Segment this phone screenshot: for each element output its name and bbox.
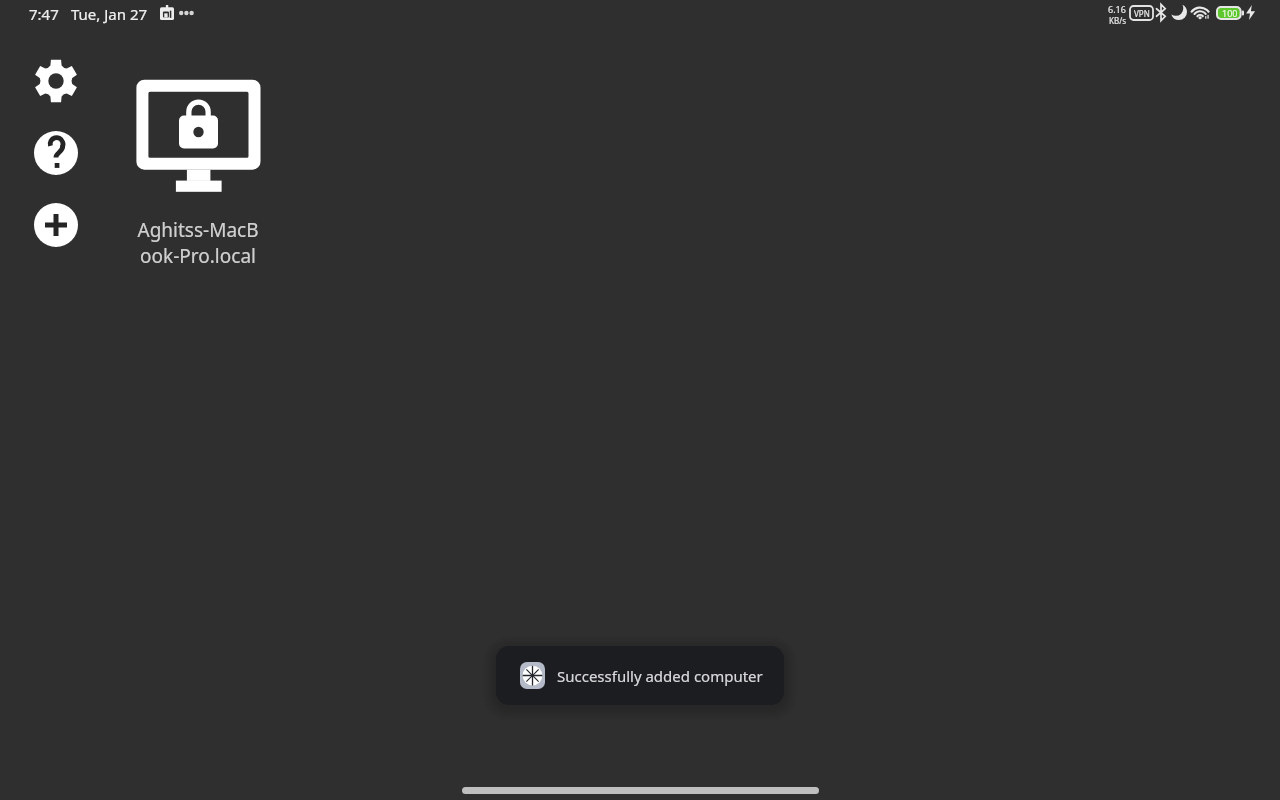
staticText: KB/s (1109, 15, 1126, 26)
button[interactable]: Settings (34, 59, 78, 103)
staticText: 7:47 (29, 4, 59, 24)
staticText: Tue, Jan 27 (71, 4, 148, 24)
button[interactable]: Add computer (34, 203, 78, 247)
staticText: Successfully added computer (557, 666, 763, 686)
staticText: 6.16 (1108, 3, 1126, 15)
staticText: Aghitss-MacB (137, 217, 259, 243)
button[interactable]: Aghitss-MacB (118, 66, 278, 269)
button[interactable]: Help (34, 131, 78, 175)
staticText: 100 (1222, 7, 1238, 19)
staticText: VPN (1134, 8, 1150, 19)
staticText: ook-Pro.local (140, 243, 256, 269)
